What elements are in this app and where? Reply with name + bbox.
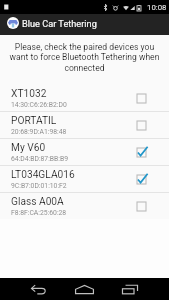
button[interactable]: Blue Car Tethering icon — [7, 17, 19, 29]
staticText: My V60 — [11, 142, 46, 154]
staticText: 20:68:9D:A1:98:48 — [11, 128, 67, 136]
button[interactable]: LT034GLA016 — [0, 166, 169, 192]
button[interactable]: Recent apps — [115, 278, 145, 300]
staticText: Glass A00A — [11, 196, 64, 208]
staticText: Please, check the paired devices you wan… — [8, 42, 161, 74]
button[interactable]: Select device — [137, 202, 146, 211]
staticText: 14:30:C6:26:B2:D0 — [11, 101, 67, 109]
button[interactable]: XT1032 — [0, 85, 169, 111]
staticText: 9C:B7:0D:01:10:F2 — [11, 182, 67, 190]
staticText: XT1032 — [11, 88, 47, 100]
button[interactable]: Select device — [137, 121, 146, 130]
staticText: 10:08 — [147, 3, 167, 12]
staticText: 64:D4:BD:87:BB:B9 — [11, 155, 69, 163]
button[interactable]: Back — [23, 278, 53, 300]
staticText: LT034GLA016 — [11, 169, 75, 181]
button[interactable]: Select device — [137, 148, 146, 157]
button[interactable]: Select device — [137, 175, 146, 184]
button[interactable]: Home — [69, 278, 99, 300]
button[interactable]: Select device — [137, 94, 146, 103]
staticText: Blue Car Tethering — [22, 18, 97, 29]
button[interactable]: PORTATIL — [0, 112, 169, 138]
staticText: F8:8F:CA:25:60:28 — [11, 209, 67, 217]
staticText: PORTATIL — [11, 115, 57, 127]
button[interactable]: My V60 — [0, 139, 169, 165]
button[interactable]: Glass A00A — [0, 193, 169, 219]
